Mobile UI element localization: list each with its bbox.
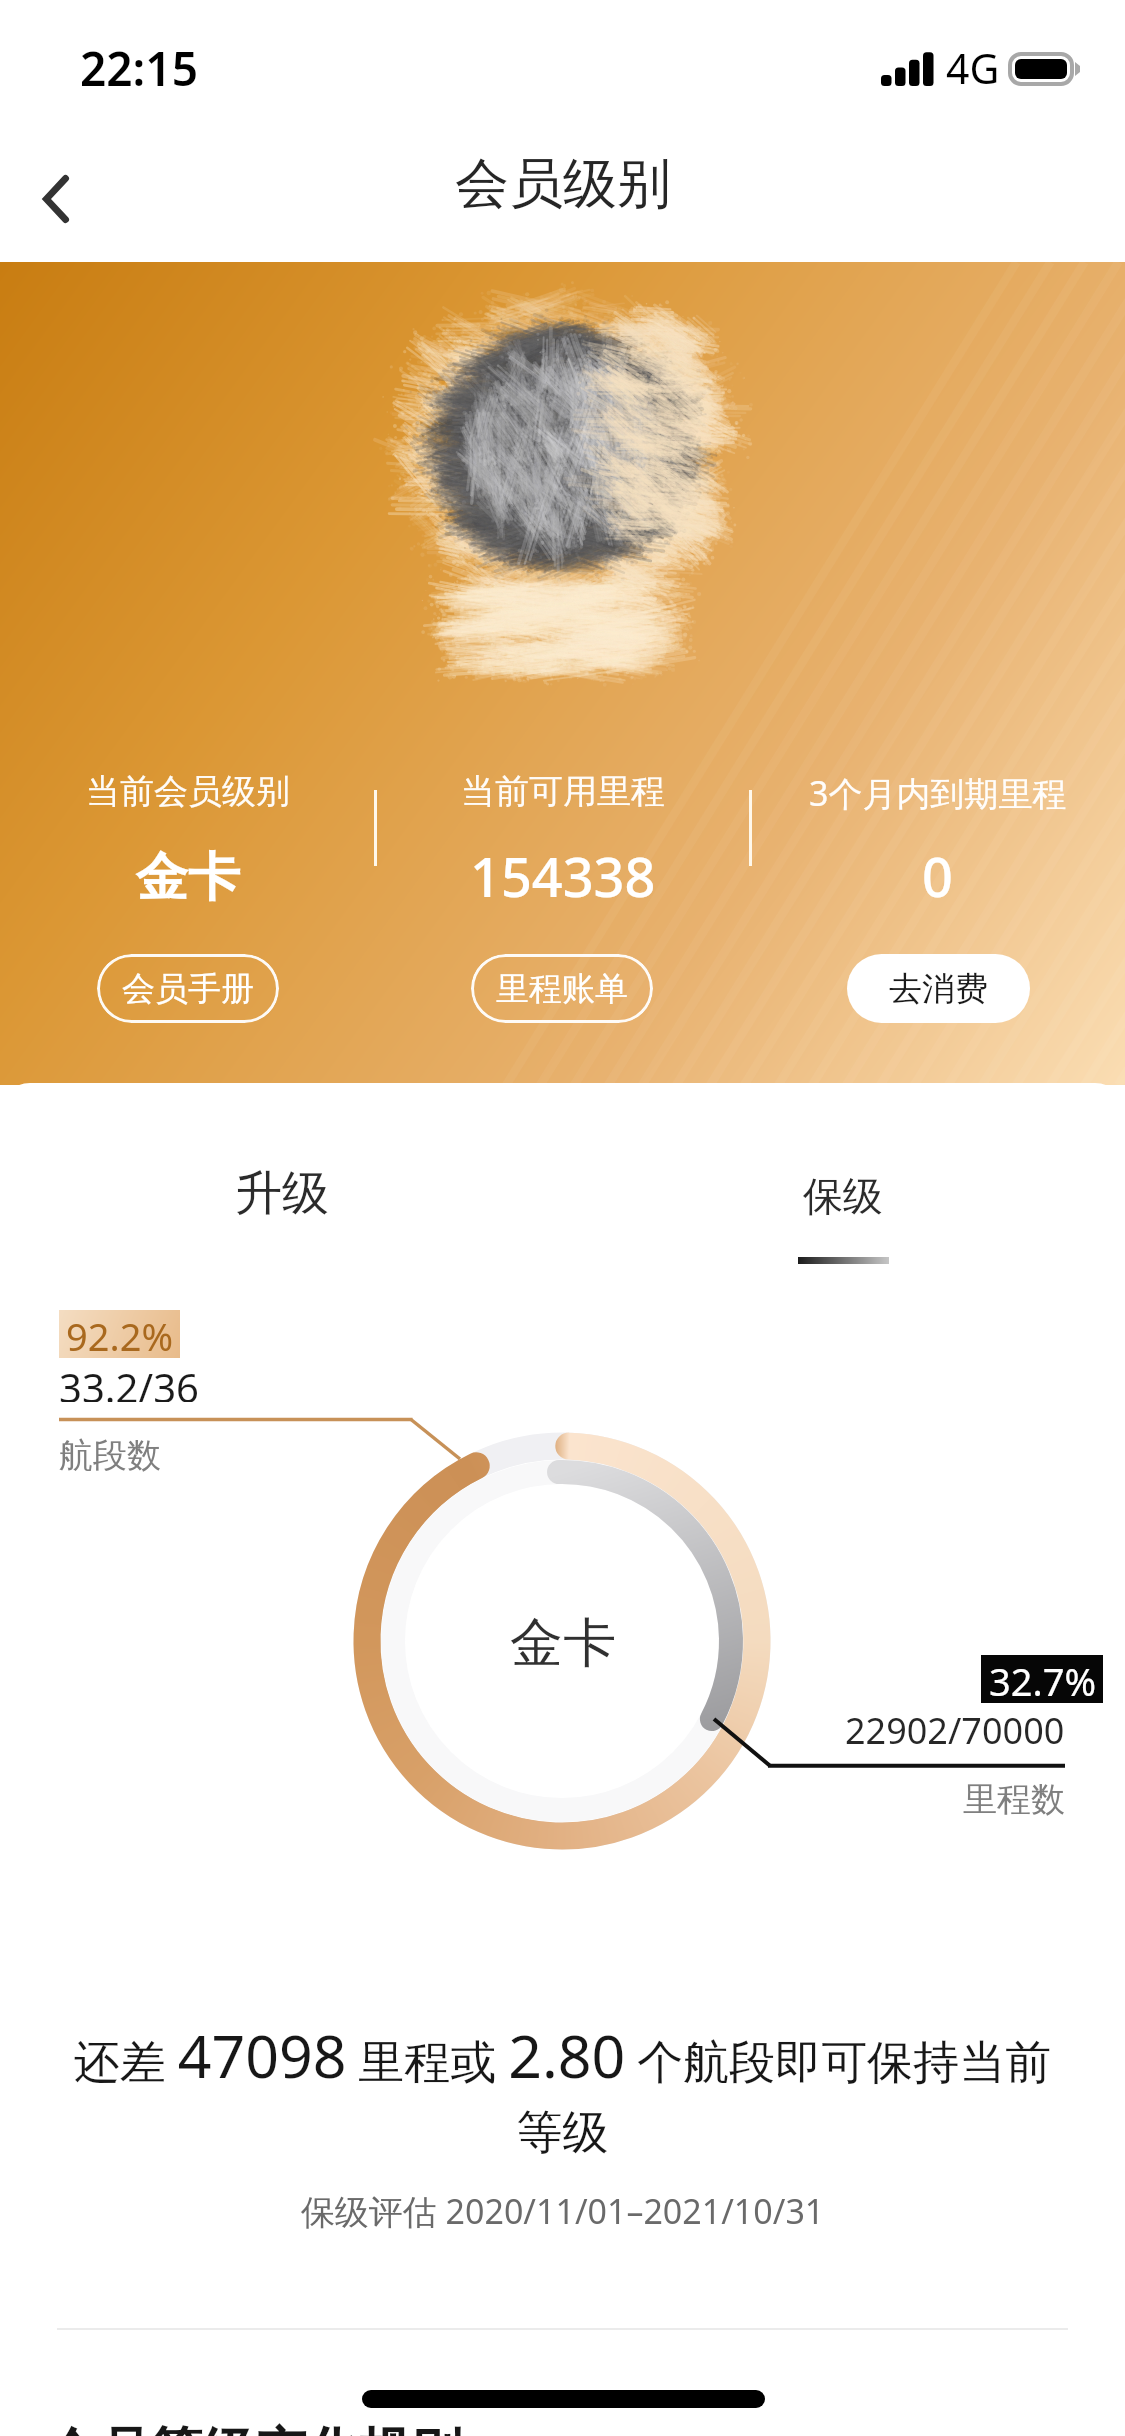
staticText: 会员级别	[455, 150, 671, 218]
staticText: 154338	[470, 839, 656, 913]
button[interactable]: 升级	[166, 1123, 398, 1243]
staticText: 保级	[803, 1171, 883, 1221]
staticText: 3个月内到期里程	[809, 770, 1067, 816]
staticText: 会员手册	[122, 968, 254, 1010]
staticText: 当前可用里程	[461, 770, 665, 813]
staticText: 金卡	[136, 845, 240, 911]
staticText: 32.7%	[989, 1655, 1096, 1703]
staticText: 92.2%	[66, 1310, 173, 1358]
staticText: 当前会员级别	[86, 770, 290, 813]
staticText: 金卡	[510, 1610, 616, 1677]
button[interactable]: 会员手册	[97, 954, 279, 1023]
staticText: 会员等级变化规则	[46, 2420, 462, 2436]
staticText: 升级	[235, 1164, 329, 1223]
button[interactable]: 去消费	[847, 954, 1030, 1023]
staticText: 去消费	[889, 968, 988, 1010]
staticText: 22:15	[80, 37, 198, 100]
staticText: 4G	[946, 40, 1000, 96]
staticText: 0	[922, 839, 953, 913]
staticText: 33.2/36	[59, 1360, 199, 1402]
button[interactable]: 里程账单	[471, 954, 653, 1023]
staticText: 里程账单	[496, 968, 628, 1010]
staticText: 里程数	[963, 1778, 1065, 1816]
staticText: 22902/70000	[845, 1706, 1065, 1748]
staticText: 保级评估 2020/11/01–2021/10/31	[0, 2188, 1125, 2234]
button[interactable]: 保级	[727, 1123, 959, 1273]
button[interactable]: Back	[0, 144, 112, 254]
staticText: 还差 47098 里程或 2.80 个航段即可保持当前 等级	[70, 2015, 1055, 2161]
staticText: 航段数	[59, 1434, 161, 1472]
